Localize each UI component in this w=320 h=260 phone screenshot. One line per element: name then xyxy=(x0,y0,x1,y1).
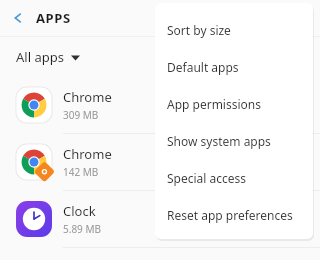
staticText: Show system apps xyxy=(167,133,271,149)
staticText: 309 MB xyxy=(63,108,99,122)
staticText: Default apps xyxy=(167,59,239,75)
button[interactable]: Default apps xyxy=(155,48,313,85)
staticText: Chrome xyxy=(63,88,112,106)
button[interactable]: App permissions xyxy=(155,85,313,122)
button[interactable]: Special access xyxy=(155,159,313,196)
button[interactable]: Chrome xyxy=(0,77,320,134)
staticText: App permissions xyxy=(167,96,261,112)
staticText: APPS xyxy=(36,9,71,27)
staticText: Clock xyxy=(63,202,96,220)
staticText: 5.89 MB xyxy=(63,222,102,236)
button[interactable]: Chrome xyxy=(0,134,320,191)
button[interactable]: Show system apps xyxy=(155,122,313,159)
button[interactable]: Reset app preferences xyxy=(155,196,313,233)
button[interactable]: Sort by size xyxy=(155,11,313,48)
button[interactable]: Back xyxy=(0,0,36,36)
staticText: 142 MB xyxy=(63,165,99,179)
staticText: Chrome xyxy=(63,145,112,163)
staticText: Sort by size xyxy=(167,22,231,38)
staticText: Special access xyxy=(167,170,247,186)
staticText: All apps xyxy=(16,48,64,66)
staticText: Reset app preferences xyxy=(167,207,293,223)
button[interactable]: Clock xyxy=(0,191,320,248)
button[interactable]: All apps xyxy=(0,37,320,77)
